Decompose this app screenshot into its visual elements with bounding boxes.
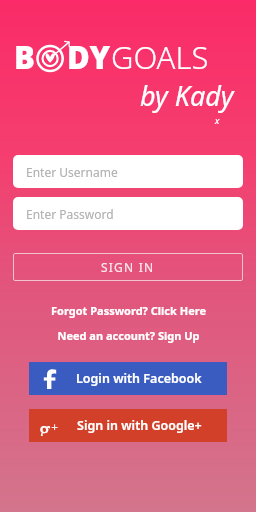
button[interactable]: Forgot Password? Click Here [0, 299, 256, 321]
button[interactable]: Need an account? Sign Up [0, 324, 256, 346]
button[interactable]: SIGN IN [13, 253, 243, 281]
button[interactable]: Sign in with Google Plus [29, 409, 227, 442]
staticText: Enter Password [26, 206, 114, 222]
staticText: DY [67, 36, 111, 78]
staticText: g [39, 416, 51, 436]
button[interactable]: Enter Password [13, 197, 243, 230]
button[interactable]: Login with Facebook [29, 362, 227, 395]
staticText: B [14, 36, 35, 78]
staticText: Sign in with Google+ [77, 417, 202, 434]
staticText: Login with Facebook [76, 370, 202, 387]
staticText: GOALS [111, 36, 209, 78]
staticText: Need an account? Sign Up [57, 328, 200, 343]
staticText: Forgot Password? Click Here [51, 303, 206, 318]
button[interactable]: Enter Username [13, 155, 243, 188]
staticText: x [215, 114, 220, 126]
staticText: + [51, 418, 59, 436]
staticText: SIGN IN [101, 259, 155, 275]
staticText: Enter Username [26, 164, 118, 180]
staticText: by Kady [140, 77, 234, 114]
